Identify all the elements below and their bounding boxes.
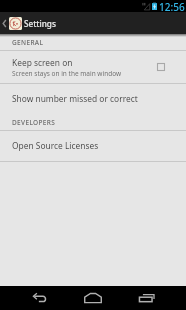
staticText: Show number missed or correct bbox=[12, 93, 138, 104]
staticText: DEVELOPERS bbox=[12, 118, 56, 127]
staticText: Open Source Licenses bbox=[12, 140, 99, 151]
button[interactable]: Home bbox=[74, 286, 112, 310]
staticText: 12:56 bbox=[159, 0, 185, 12]
button[interactable]: Open Source Licenses bbox=[0, 131, 186, 161]
button[interactable]: Navigate up bbox=[0, 12, 186, 34]
button[interactable]: Recent apps bbox=[127, 286, 165, 310]
staticText: Settings bbox=[24, 18, 56, 29]
staticText: GENERAL bbox=[12, 38, 44, 47]
button[interactable]: Keep screen on bbox=[0, 51, 186, 83]
button[interactable]: Show number missed or correct bbox=[0, 84, 186, 113]
staticText: Keep screen on bbox=[12, 57, 73, 68]
button[interactable]: Back bbox=[20, 286, 58, 310]
staticText: Screen stays on in the main window bbox=[12, 69, 122, 78]
